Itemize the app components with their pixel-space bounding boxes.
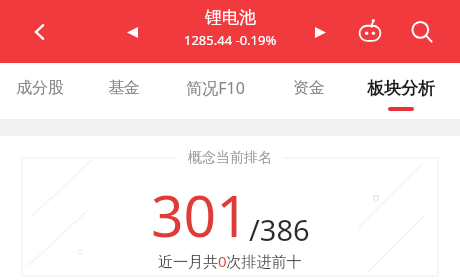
staticText: 资金 — [293, 78, 325, 98]
button[interactable]: AI assistant — [352, 14, 388, 50]
staticText: /386 — [249, 210, 310, 249]
staticText: 概念当前排名 — [188, 149, 272, 167]
staticText: 1285.44 -0.19% — [184, 31, 277, 49]
button[interactable]: 基金 — [78, 63, 170, 113]
button[interactable]: 成分股 — [0, 63, 86, 113]
staticText: 成分股 — [16, 78, 64, 98]
button[interactable]: 简况F10 — [169, 63, 261, 113]
button[interactable]: 资金 — [263, 63, 355, 113]
staticText: 板块分析 — [367, 78, 435, 99]
staticText: 301 — [151, 176, 249, 254]
staticText: 基金 — [108, 78, 140, 98]
staticText: 锂电池 — [205, 7, 256, 28]
staticText: 近一月共0次排进前十 — [158, 251, 302, 271]
button[interactable]: Previous — [118, 18, 146, 46]
button[interactable]: 板块分析 — [355, 63, 447, 113]
staticText: 简况F10 — [186, 77, 245, 99]
button[interactable]: Search — [404, 14, 440, 50]
button[interactable]: Next — [306, 18, 334, 46]
button[interactable]: Back — [22, 14, 58, 50]
